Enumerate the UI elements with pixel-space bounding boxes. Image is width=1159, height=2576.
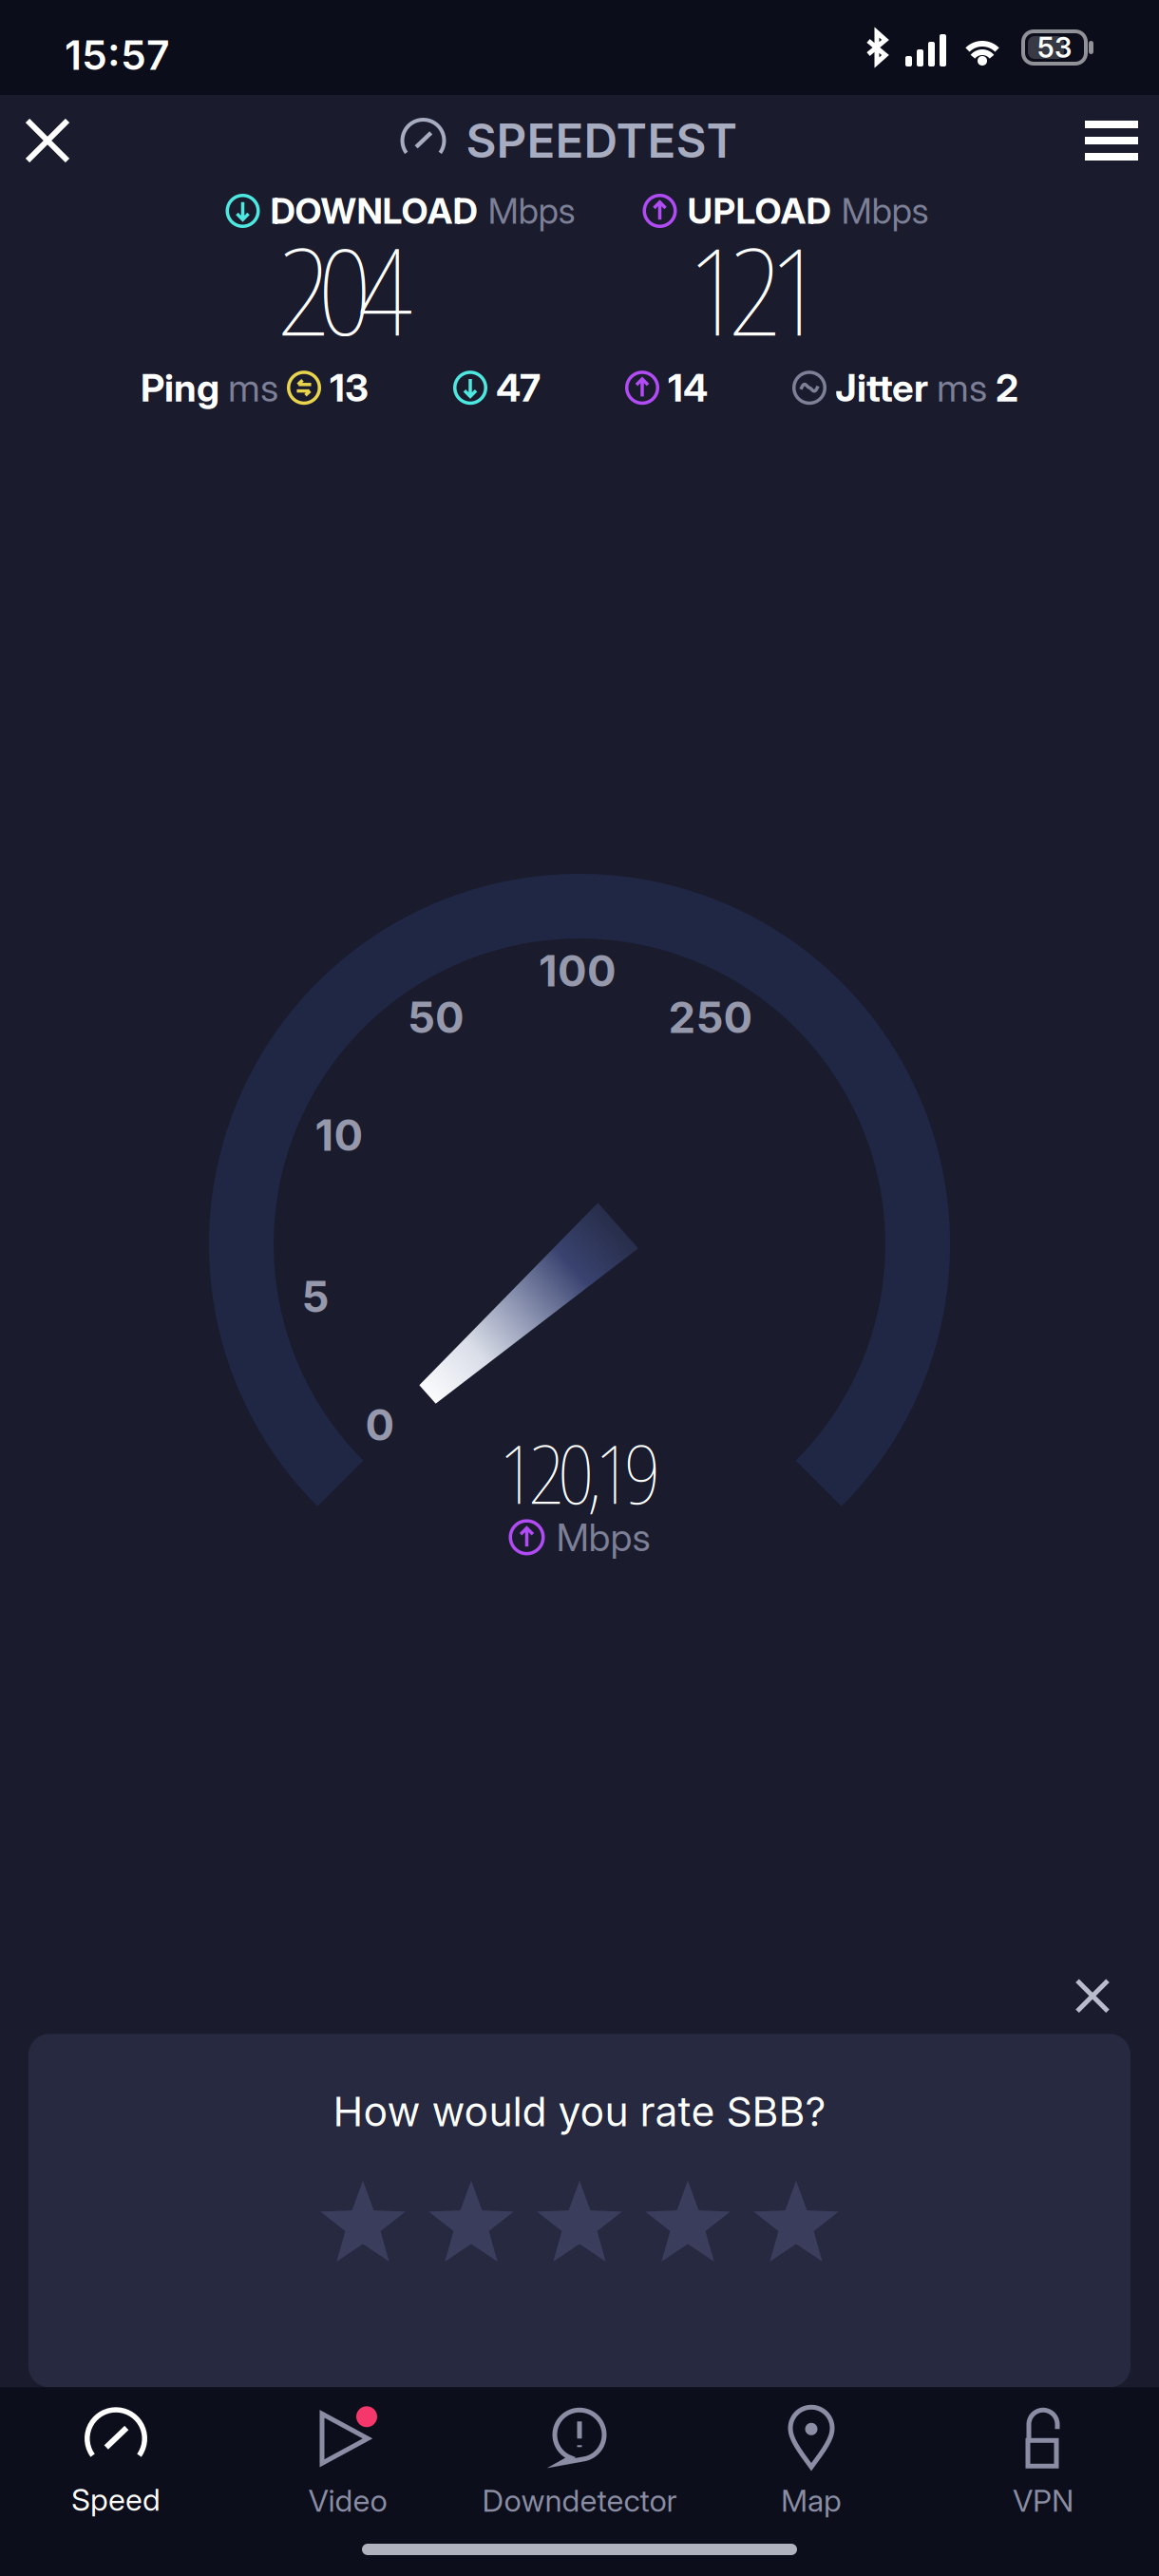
- staticText: 53: [1037, 31, 1072, 64]
- staticText: SPEEDTEST: [466, 112, 738, 169]
- button[interactable]: Close: [0, 97, 95, 184]
- staticText: 121: [687, 207, 823, 371]
- staticText: Map: [781, 2482, 842, 2519]
- staticText: DOWNLOAD: [270, 189, 477, 232]
- staticText: Mbps: [556, 1514, 650, 1560]
- staticText: VPN: [1013, 2482, 1073, 2519]
- staticText: Mbps: [488, 189, 575, 232]
- staticText: 47: [496, 365, 541, 411]
- staticText: Ping: [141, 365, 219, 411]
- staticText: 120,19: [499, 1417, 660, 1528]
- staticText: 5: [302, 1271, 329, 1323]
- staticText: 50: [408, 991, 465, 1043]
- staticText: 13: [330, 365, 369, 411]
- button[interactable]: Dismiss: [1054, 1958, 1130, 2034]
- staticText: 204: [277, 207, 413, 371]
- button[interactable]: Menu: [1064, 97, 1159, 184]
- staticText: Jitter: [835, 365, 928, 411]
- staticText: Video: [308, 2482, 387, 2519]
- button[interactable]: VPN: [927, 2406, 1159, 2519]
- staticText: 250: [668, 991, 753, 1043]
- staticText: 2: [996, 365, 1018, 411]
- staticText: 15:57: [65, 31, 170, 80]
- staticText: Speed: [71, 2481, 161, 2518]
- staticText: 100: [539, 945, 617, 997]
- staticText: 14: [668, 365, 708, 411]
- staticText: Mbps: [841, 189, 929, 232]
- staticText: How would you rate SBB?: [333, 2087, 826, 2136]
- staticText: Downdetector: [482, 2482, 677, 2519]
- button[interactable]: Downdetector: [464, 2406, 695, 2519]
- staticText: ms: [937, 365, 987, 411]
- staticText: 10: [315, 1109, 363, 1161]
- button[interactable]: Speed: [0, 2407, 232, 2518]
- button[interactable]: Map: [695, 2406, 927, 2519]
- staticText: 0: [365, 1399, 395, 1451]
- button[interactable]: Video: [232, 2406, 464, 2519]
- staticText: ms: [228, 365, 278, 411]
- staticText: UPLOAD: [687, 189, 831, 232]
